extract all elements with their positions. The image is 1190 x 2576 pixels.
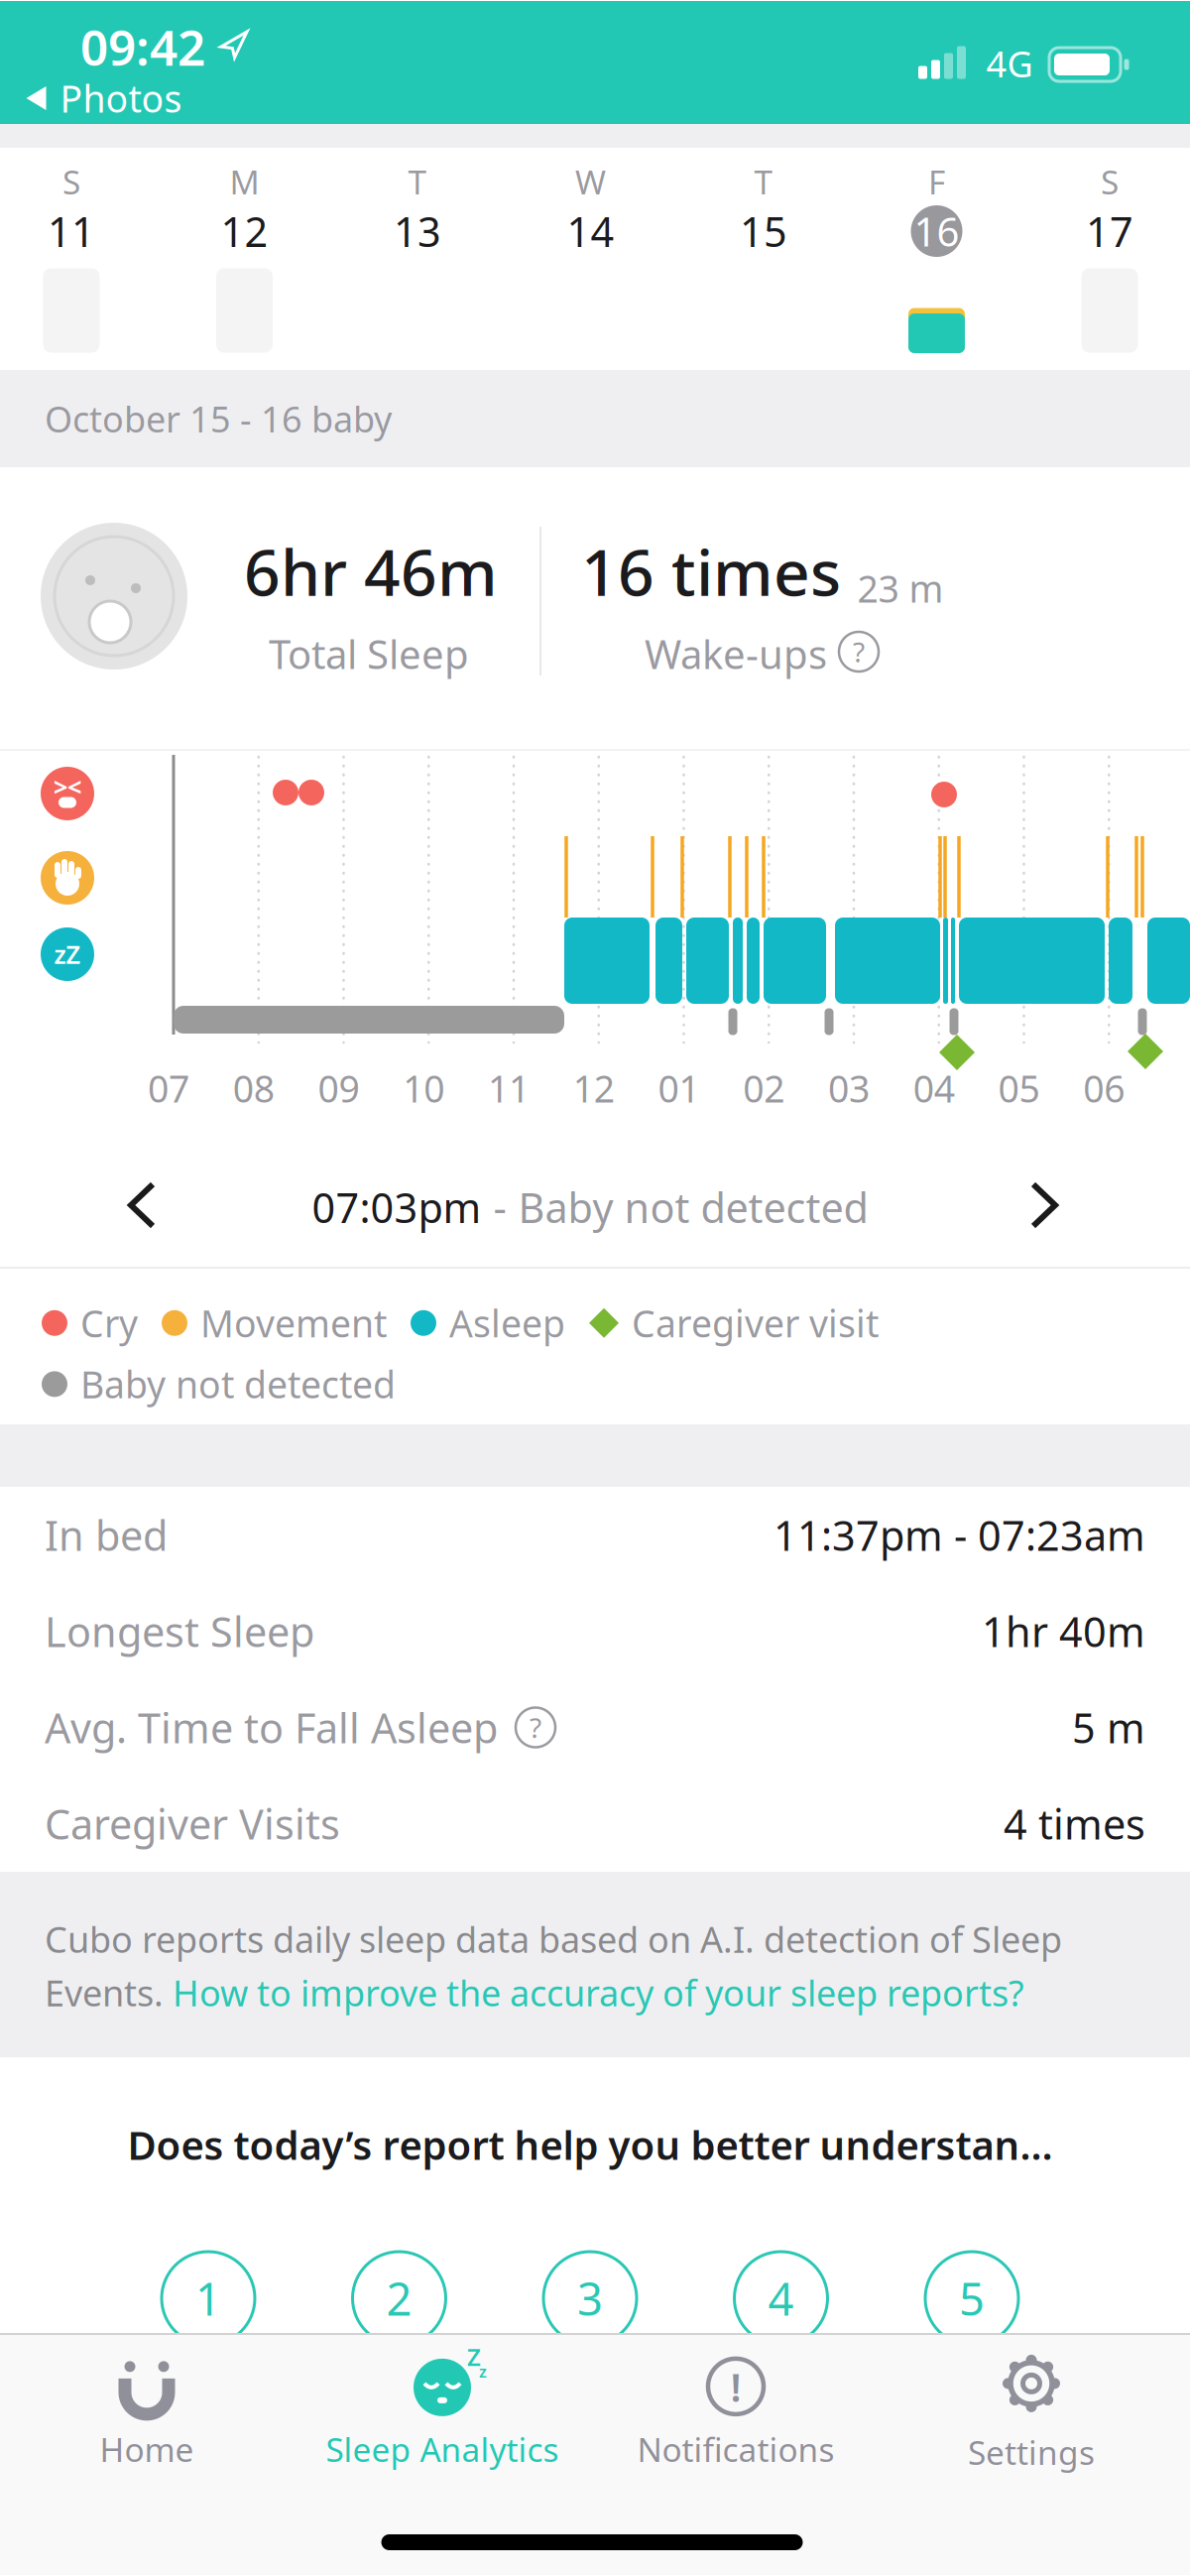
staticText: 11 [48,204,95,258]
staticText: Z [467,2341,481,2372]
staticText: T [408,160,427,204]
staticText: Cry [80,1298,138,1348]
staticText: 3 [577,2268,603,2328]
staticText: 1hr 40m [982,1604,1145,1658]
button[interactable]: S [0,148,158,370]
staticText: ? [853,633,865,670]
staticText: Settings [968,2430,1095,2474]
staticText: 4 times [1004,1796,1145,1851]
button[interactable]: 1 [162,2252,255,2345]
button[interactable]: Settings [888,2329,1175,2498]
button[interactable]: 3 [543,2252,637,2345]
staticText: Notifications [637,2427,834,2471]
staticText: 08 [233,1064,274,1113]
staticText: ! [730,2360,741,2413]
staticText: Caregiver visit [632,1298,879,1348]
staticText: Movement [200,1298,387,1348]
button[interactable]: Z [298,2329,586,2498]
staticText: Longest Sleep [45,1604,314,1658]
staticText: 03 [828,1064,870,1113]
staticText: 12 [573,1064,615,1113]
button[interactable]: T [331,148,504,370]
button[interactable]: T [677,148,850,370]
staticText: 5 m [1072,1700,1145,1755]
staticText: 11:37pm - 07:23am [773,1508,1145,1562]
staticText: 09:42 [80,14,205,79]
staticText: 2 [386,2268,412,2328]
staticText: S [62,160,80,204]
staticText: M [230,160,259,204]
staticText: Baby not detected [80,1360,396,1409]
button[interactable]: F [850,148,1023,370]
staticText: Asleep [449,1298,565,1348]
staticText: October 15 - 16 baby [45,395,392,442]
button[interactable]: 2 [353,2252,446,2345]
button[interactable] [1005,1156,1084,1255]
staticText: Baby not detected [518,1180,868,1234]
staticText: 06 [1083,1064,1125,1113]
staticText: 14 [567,204,614,258]
staticText: zZ [54,938,81,971]
button[interactable]: S [1023,148,1190,370]
button[interactable]: W [504,148,677,370]
staticText: 02 [743,1064,785,1113]
staticText: 15 [740,204,787,258]
staticText: Photos [60,74,182,123]
staticText: W [575,160,606,204]
staticText: 13 [394,204,441,258]
staticText: 5 [959,2268,985,2328]
staticText: F [928,160,945,204]
staticText: 09 [318,1064,359,1113]
button[interactable] [102,1156,181,1255]
staticText: 01 [658,1064,700,1113]
button[interactable]: 5 [925,2252,1018,2345]
staticText: 07:03pm [312,1180,481,1234]
staticText: 4G [986,40,1033,87]
button[interactable]: M [158,148,331,370]
staticText: 23 m [857,564,944,613]
staticText: In bed [45,1508,168,1562]
staticText: 6hr 46m [244,529,498,613]
staticText: 05 [998,1064,1040,1113]
staticText: 4 [768,2268,794,2328]
staticText: 16 [914,205,959,257]
staticText: 10 [403,1064,444,1113]
staticText: Home [100,2427,194,2471]
button[interactable]: Photos [26,74,182,123]
button[interactable]: 4 [734,2252,828,2345]
staticText: 07 [148,1064,189,1113]
staticText: Total Sleep [269,627,469,680]
button[interactable]: ! [592,2329,880,2498]
staticText: Events. [45,1969,173,2016]
staticText: 11 [488,1064,530,1113]
staticText: 1 [195,2268,221,2328]
staticText: Caregiver Visits [45,1796,340,1851]
staticText: Avg. Time to Fall Asleep [45,1700,498,1755]
button[interactable]: Home [3,2329,291,2498]
staticText: Cubo reports daily sleep data based on A… [45,1915,1062,1963]
staticText: z [479,2361,487,2382]
staticText: S [1101,160,1119,204]
staticText: 16 times [581,529,841,613]
staticText: T [754,160,773,204]
staticText: 12 [221,204,268,258]
staticText: - [493,1180,506,1234]
staticText: >< [54,770,81,803]
staticText: Sleep Analytics [326,2427,559,2471]
staticText: How to improve the accuracy of your slee… [173,1969,1024,2016]
staticText: 04 [913,1064,955,1113]
staticText: Wake-ups [645,627,827,680]
staticText: Does today’s report help you better unde… [127,2118,1053,2171]
staticText: 17 [1086,204,1133,258]
button[interactable]: How to improve the accuracy of your slee… [173,1969,1024,2016]
staticText: ? [530,1709,541,1746]
